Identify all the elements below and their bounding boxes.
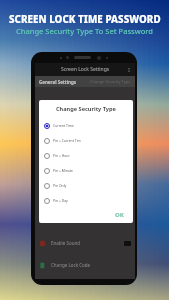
staticText: Pin Only — [53, 183, 67, 188]
staticText: OK — [115, 211, 124, 219]
button[interactable]: Enable Sound — [35, 233, 135, 253]
staticText: Pin + Minute — [53, 168, 74, 173]
button[interactable]: Pin Only — [39, 178, 133, 193]
staticText: Change Security Type — [56, 105, 116, 113]
button[interactable]: Change Lock Code — [35, 255, 135, 275]
button[interactable]: Pin + Day — [39, 193, 133, 208]
staticText: Pin + Current Tim — [53, 138, 81, 143]
staticText: Change Security Type — [90, 79, 131, 84]
staticText: Pin + Hour — [53, 153, 70, 158]
staticText: Enable Sound — [51, 240, 80, 246]
staticText: Current Time — [53, 123, 74, 128]
staticText: Change Security Type To Set Password — [16, 26, 154, 36]
button[interactable]: OK — [115, 211, 133, 221]
button[interactable]: Pin + Minute — [39, 163, 133, 178]
button[interactable]: Current Time — [39, 118, 133, 133]
button[interactable]: More options — [126, 67, 132, 73]
staticText: General Settings — [39, 79, 77, 85]
staticText: Change Lock Code — [51, 262, 91, 268]
staticText: SCREEN LOCK TIME PASSWORD — [9, 13, 161, 26]
button[interactable]: Pin + Hour — [39, 148, 133, 163]
staticText: Pin + Day — [53, 198, 68, 203]
staticText: Screen Lock Settings — [61, 66, 110, 73]
button[interactable]: Pin + Current Tim — [39, 133, 133, 148]
